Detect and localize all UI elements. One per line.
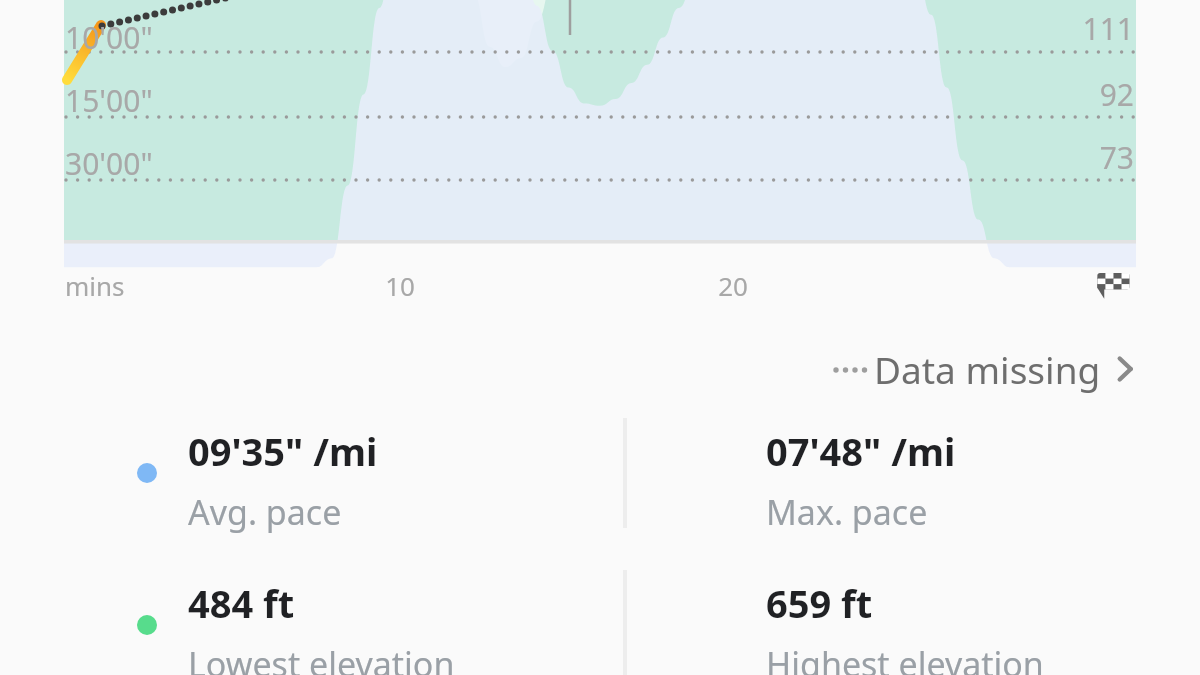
staticText: 30'00"	[65, 143, 153, 184]
staticText: 73	[880, 137, 1134, 178]
staticText: 111	[880, 8, 1134, 49]
staticText: 15'00"	[65, 80, 153, 121]
button[interactable]: 07'48" /mi	[766, 425, 956, 535]
button[interactable]: 484 ft	[188, 577, 455, 675]
staticText: 07'48" /mi	[766, 425, 956, 477]
staticText: 92	[880, 74, 1134, 115]
staticText: 20	[663, 268, 803, 303]
staticText: mins	[65, 268, 125, 303]
staticText: Max. pace	[766, 489, 928, 535]
button[interactable]: Finish	[1088, 260, 1138, 310]
staticText: 10	[330, 268, 470, 303]
button[interactable]: 659 ft	[766, 577, 1044, 675]
staticText: Data missing	[874, 344, 1101, 394]
button[interactable]: 09'35" /mi	[188, 425, 378, 535]
staticText: 10'00"	[65, 17, 153, 58]
button[interactable]: Data missing	[826, 338, 1143, 400]
staticText: Avg. pace	[188, 489, 342, 535]
staticText: Lowest elevation	[188, 641, 455, 675]
staticText: Highest elevation	[766, 641, 1044, 675]
staticText: 09'35" /mi	[188, 425, 378, 477]
staticText: 659 ft	[766, 577, 873, 629]
staticText: 484 ft	[188, 577, 295, 629]
